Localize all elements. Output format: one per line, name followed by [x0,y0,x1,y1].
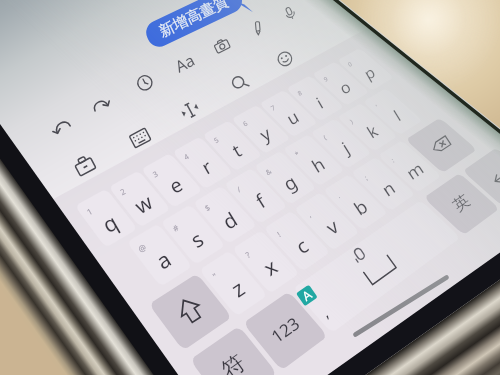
button[interactable]: Phone showing an on-screen keyboard [0,0,500,375]
